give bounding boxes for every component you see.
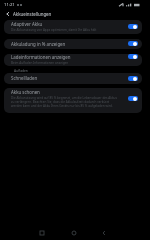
- button[interactable]: Toggle: [128, 96, 138, 101]
- button[interactable]: Back: [98, 227, 110, 239]
- button[interactable]: Toggle: [128, 24, 138, 29]
- staticText: Schnellladen: [11, 75, 38, 81]
- staticText: Beim Aufladen Informationen anzeigen: [11, 61, 69, 65]
- button[interactable]: Adaptiver Akku: [4, 20, 142, 34]
- staticText: Ladeinformationen anzeigen: [11, 54, 71, 60]
- button[interactable]: Toggle: [128, 54, 138, 59]
- staticText: Die Akkunutzung wird auf 85 % begrenzt, …: [11, 96, 120, 108]
- button[interactable]: Schnellladen: [4, 73, 142, 84]
- staticText: 11:21: [4, 2, 15, 8]
- button[interactable]: Recents: [36, 227, 48, 239]
- button[interactable]: Home: [68, 227, 80, 239]
- button[interactable]: Akku schonen: [4, 88, 142, 113]
- button[interactable]: Ladeinformationen anzeigen: [4, 54, 142, 66]
- staticText: Aufladen: [14, 68, 28, 72]
- staticText: Die Akkunutzung von Apps optimieren, dam…: [11, 28, 97, 32]
- staticText: Akku schonen: [11, 89, 40, 95]
- staticText: Akkueinstellungen: [13, 11, 52, 17]
- staticText: Adaptiver Akku: [11, 21, 43, 27]
- staticText: Akkuladung in % anzeigen: [11, 41, 66, 47]
- button[interactable]: Back: [3, 9, 12, 18]
- button[interactable]: Akkuladung in % anzeigen: [4, 39, 142, 49]
- button[interactable]: Toggle: [128, 76, 138, 81]
- button[interactable]: Toggle: [128, 41, 138, 46]
